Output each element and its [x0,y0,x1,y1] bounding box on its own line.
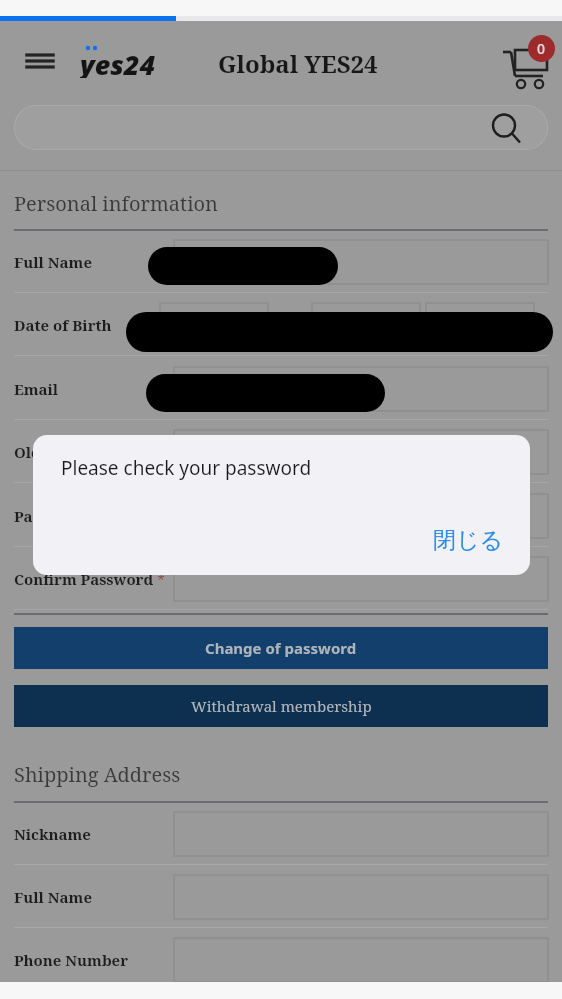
staticText: Nickname [14,824,91,844]
staticText: Global YES24 [218,47,378,80]
button[interactable] [174,557,548,601]
staticText: Password [14,506,87,526]
staticText: Full Name [14,887,92,907]
button[interactable] [426,303,534,347]
staticText: Personal information [14,190,218,217]
button[interactable]: 閉じる [433,526,504,555]
staticText: 閉じる [433,526,504,555]
staticText: Phone Number [14,950,129,970]
staticText: Old Password [14,442,118,462]
staticText: Withdrawal membership [191,696,372,716]
staticText: Confirm Password [14,569,154,589]
button[interactable] [14,105,548,150]
staticText: * [154,570,165,588]
staticText: Email [14,379,59,399]
button[interactable] [174,367,548,411]
button[interactable]: Cart [497,32,553,84]
button[interactable]: Withdrawal membership [14,685,548,727]
button[interactable] [174,430,548,474]
staticText: 0 [537,39,546,58]
button[interactable]: yes24 home [80,46,156,78]
staticText: Full Name [14,252,92,272]
staticText: Date of Birth [14,315,112,335]
button[interactable]: Menu [22,46,58,76]
staticText: Shipping Address [14,761,181,788]
staticText: yes24 [80,46,156,78]
button[interactable] [174,494,548,538]
button[interactable] [312,303,420,347]
staticText: Please check your password [61,455,312,481]
button[interactable] [174,240,548,284]
button[interactable] [160,303,268,347]
staticText: Change of password [205,638,357,658]
button[interactable]: Change of password [14,627,548,669]
